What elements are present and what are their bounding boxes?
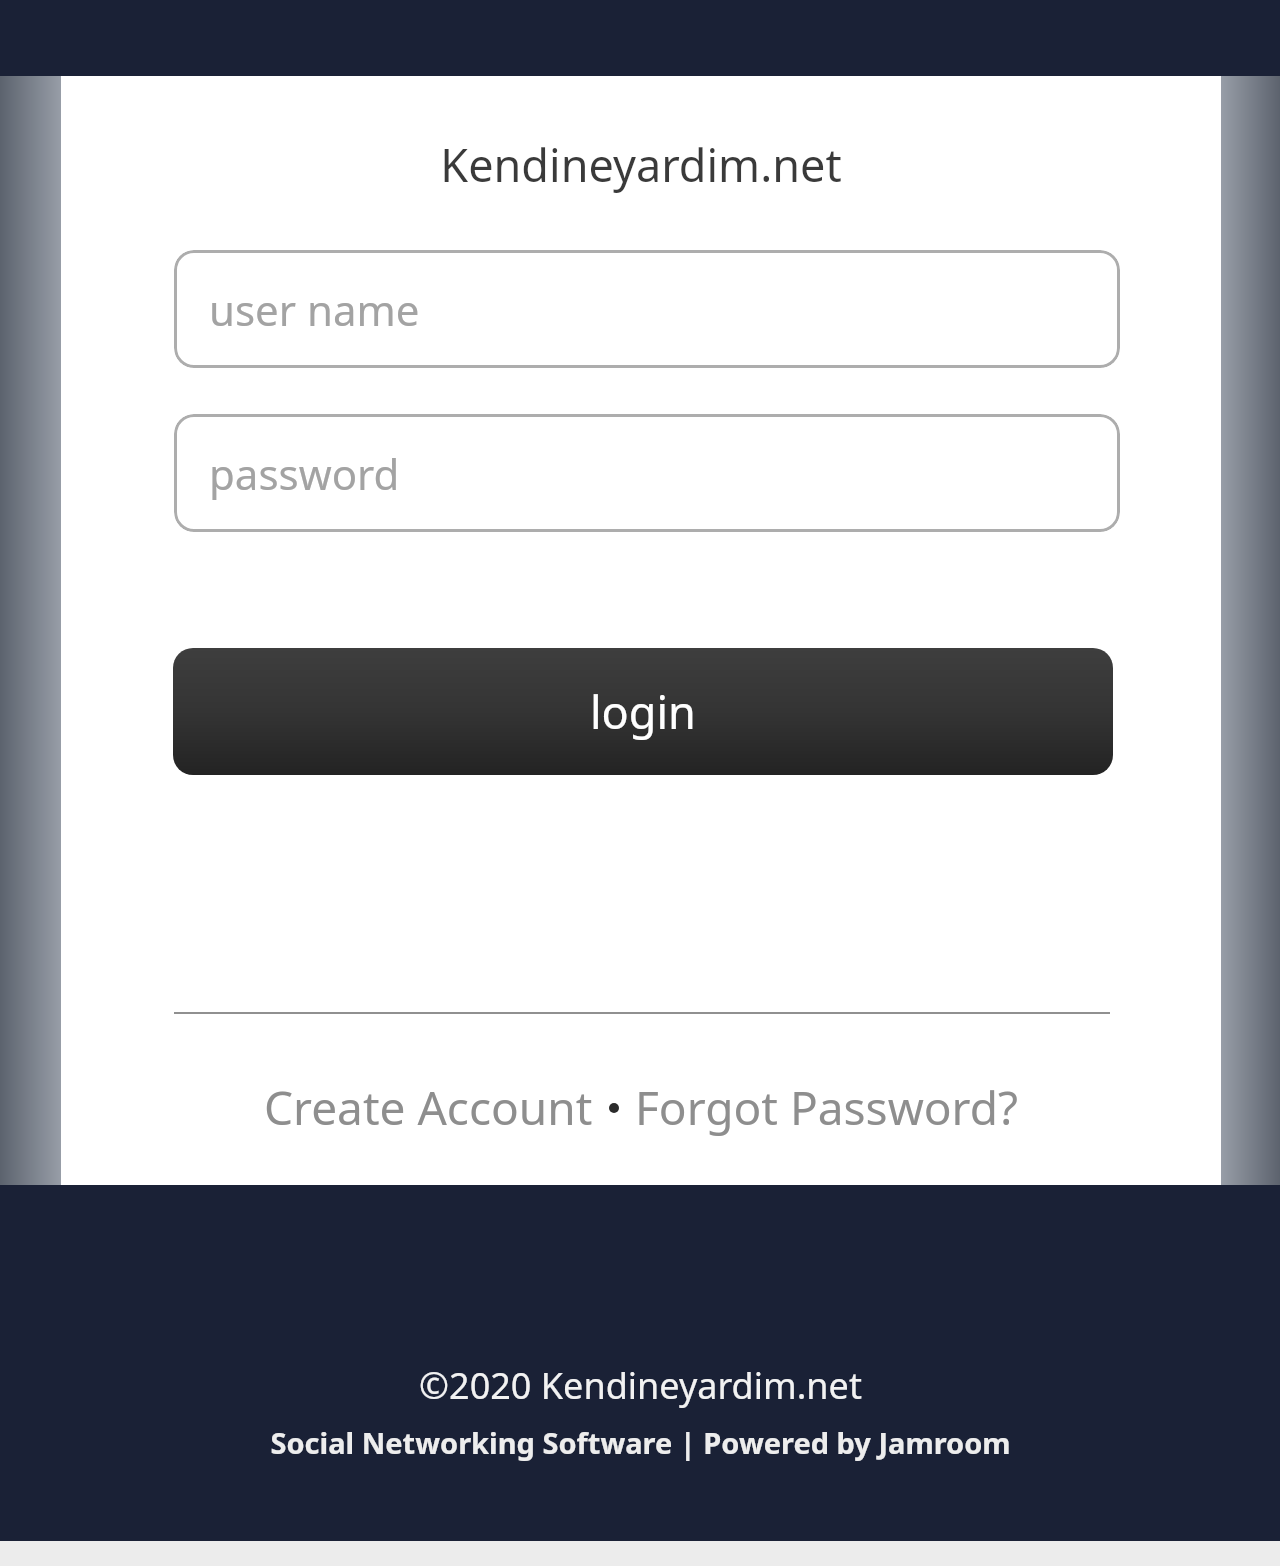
button[interactable]: user name [174, 250, 1120, 368]
staticText: login [590, 681, 696, 742]
staticText: user name [209, 281, 420, 338]
staticText: Kendineyardim.net [61, 134, 1221, 195]
button[interactable]: Create Account [264, 1076, 593, 1139]
button[interactable]: Forgot Password? [635, 1076, 1018, 1139]
staticText: password [209, 445, 400, 502]
button[interactable]: login [173, 648, 1113, 775]
staticText: Forgot Password? [635, 1076, 1018, 1139]
staticText: Social Networking Software | Powered by … [270, 1423, 1011, 1462]
staticText: ©2020 Kendineyardim.net [419, 1361, 862, 1410]
button[interactable]: password [174, 414, 1120, 532]
staticText: Create Account [264, 1076, 593, 1139]
